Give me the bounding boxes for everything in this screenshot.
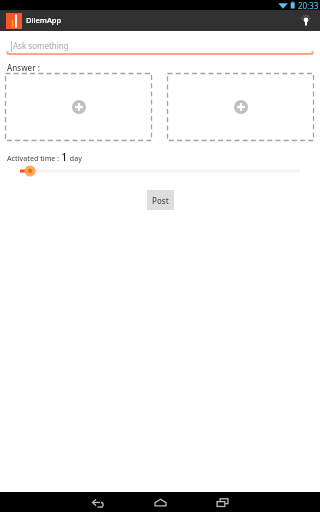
button[interactable]: Post — [147, 190, 174, 210]
button[interactable]: Add answer — [167, 73, 314, 141]
button[interactable]: New idea — [295, 10, 317, 31]
button[interactable]: Back — [67, 492, 129, 512]
button[interactable]: Recents — [191, 492, 253, 512]
staticText: Answer : — [7, 62, 40, 73]
button[interactable]: Add answer — [5, 73, 152, 141]
staticText: Post — [152, 195, 169, 206]
staticText: day — [68, 154, 82, 164]
staticText: DilemApp — [26, 15, 62, 25]
button[interactable]: Home — [129, 492, 191, 512]
staticText: Ask something — [13, 40, 69, 51]
staticText: 20:33 — [298, 0, 319, 10]
staticText: 1 — [61, 149, 68, 164]
button[interactable]: Activated time slider — [0, 163, 320, 179]
staticText: Activated time : — [7, 154, 61, 164]
